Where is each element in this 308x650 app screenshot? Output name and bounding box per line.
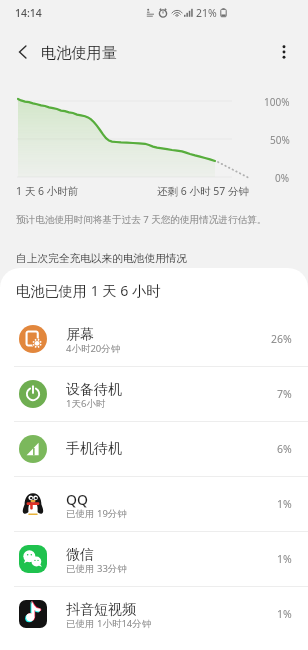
staticText: 已使用 33分钟 [66, 562, 127, 575]
staticText: 14:14 [15, 6, 42, 20]
staticText: 屏幕 [66, 326, 94, 344]
staticText: 已使用 1小时14分钟 [66, 617, 152, 630]
staticText: 还剩 6 小时 57 分钟 [157, 184, 249, 198]
button[interactable]: More options [264, 30, 308, 74]
staticText: 已使用 19分钟 [66, 507, 127, 520]
staticText: 1 天 6 小时前 [16, 184, 79, 198]
staticText: 1% [277, 497, 292, 511]
staticText: 1% [277, 552, 292, 566]
staticText: 1% [277, 607, 292, 621]
staticText: 6% [277, 442, 292, 456]
staticText: 1天6小时 [66, 397, 106, 410]
staticText: 7% [277, 387, 292, 401]
staticText: 手机待机 [66, 440, 122, 458]
staticText: 预计电池使用时间将基于过去 7 天您的使用情况进行估算。 [16, 213, 267, 226]
staticText: 自上次完全充电以来的电池使用情况 [16, 252, 187, 265]
button[interactable]: 屏幕 [0, 312, 308, 366]
staticText: 0% [275, 171, 290, 185]
staticText: 微信 [66, 546, 94, 564]
staticText: 50% [270, 133, 290, 147]
staticText: 设备待机 [66, 381, 122, 399]
staticText: QQ [66, 490, 88, 509]
staticText: 21% [196, 6, 217, 20]
staticText: 电池使用量 [41, 43, 117, 62]
button[interactable]: 手机待机 [0, 422, 308, 476]
button[interactable]: 设备待机 [0, 367, 308, 421]
staticText: 26% [271, 332, 292, 346]
staticText: 4小时20分钟 [66, 342, 121, 355]
button[interactable]: 抖音短视频 [0, 587, 308, 641]
button[interactable]: 微信 [0, 532, 308, 586]
button[interactable]: QQ [0, 477, 308, 531]
staticText: 抖音短视频 [66, 601, 136, 619]
button[interactable]: Back [0, 30, 44, 74]
staticText: 电池已使用 1 天 6 小时 [16, 281, 161, 300]
staticText: 100% [264, 95, 290, 109]
